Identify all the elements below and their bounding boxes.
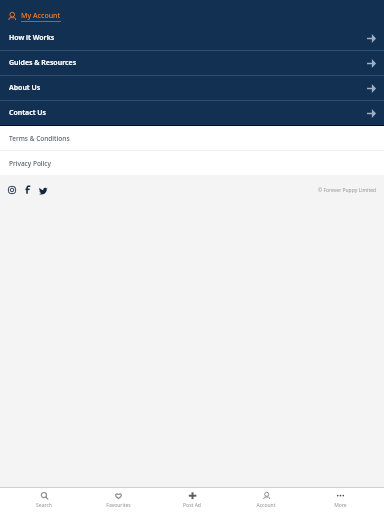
button[interactable]: Favourites <box>81 488 155 512</box>
staticText: Search <box>36 502 52 509</box>
button[interactable]: About Us <box>0 76 384 100</box>
staticText: © Forever Puppy Limited <box>318 187 377 194</box>
staticText: Terms & Conditions <box>9 134 70 143</box>
staticText: More <box>334 502 347 509</box>
staticText: Guides & Resources <box>9 58 77 68</box>
staticText: How it Works <box>9 33 55 43</box>
button[interactable]: Post Ad <box>155 488 229 512</box>
staticText: Account <box>256 502 276 509</box>
button[interactable]: Facebook <box>23 184 37 196</box>
staticText: My Account <box>21 11 61 21</box>
staticText: About Us <box>9 83 41 93</box>
staticText: Post Ad <box>183 502 201 509</box>
button[interactable]: Contact Us <box>0 101 384 125</box>
button[interactable]: Twitter <box>37 184 51 196</box>
button[interactable]: Search <box>7 488 81 512</box>
staticText: Favourites <box>106 502 131 509</box>
button[interactable]: More <box>303 488 377 512</box>
button[interactable]: Account <box>229 488 303 512</box>
button[interactable]: Instagram <box>8 184 23 196</box>
button[interactable]: My Account <box>0 0 384 26</box>
button[interactable]: How it Works <box>0 26 384 50</box>
staticText: Contact Us <box>9 108 47 118</box>
button[interactable]: Privacy Policy <box>0 151 384 175</box>
button[interactable]: Terms & Conditions <box>0 126 384 150</box>
button[interactable]: Guides & Resources <box>0 51 384 75</box>
staticText: Privacy Policy <box>9 159 51 168</box>
